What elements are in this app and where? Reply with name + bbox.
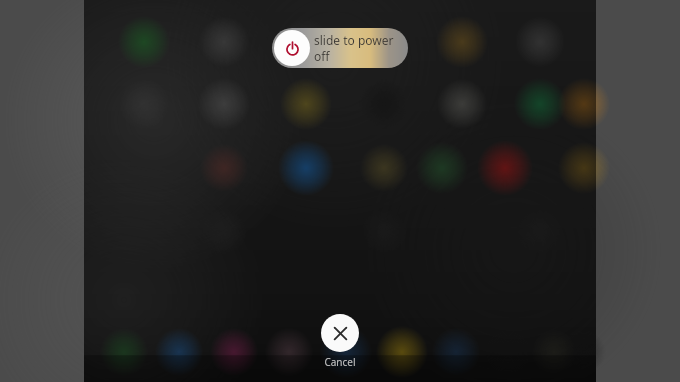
button[interactable]: Cancel (305, 314, 375, 369)
button[interactable]: slide to power off (272, 28, 408, 68)
other: Power off (274, 30, 310, 66)
staticText: Cancel (305, 355, 375, 369)
staticText: slide to power off (314, 32, 408, 64)
